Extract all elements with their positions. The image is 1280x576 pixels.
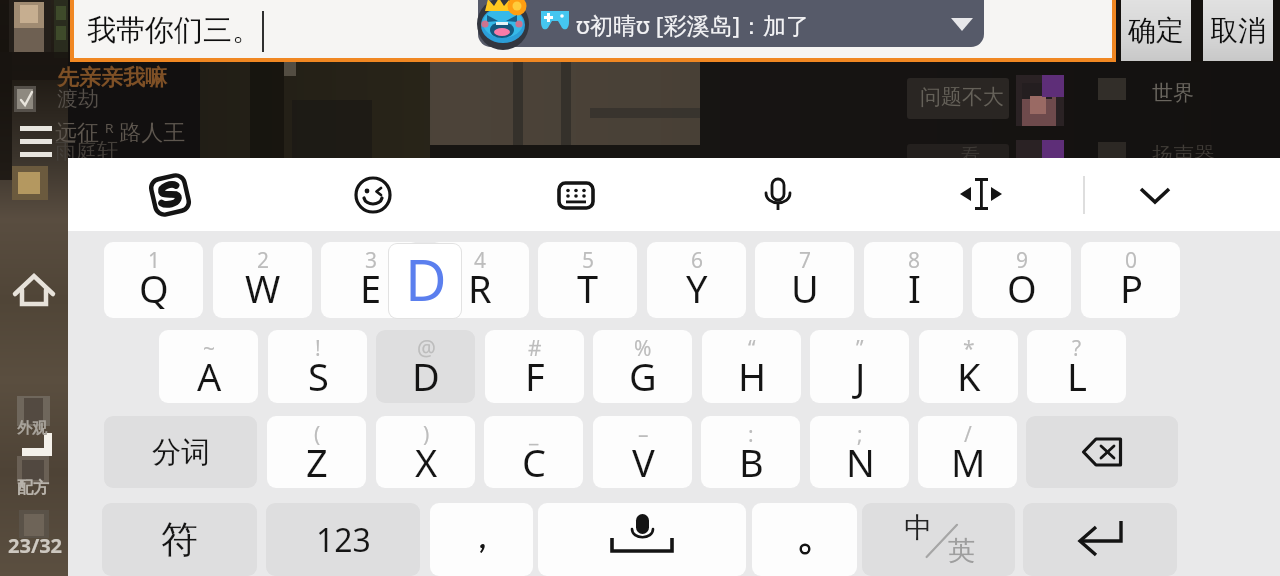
button[interactable]: ): [376, 416, 475, 488]
button[interactable]: 3: [321, 242, 420, 318]
staticText: F: [525, 350, 545, 402]
button[interactable]: %: [593, 330, 692, 403]
staticText: 取消: [1210, 13, 1266, 48]
staticText: O: [1007, 262, 1037, 314]
staticText: 23/32: [8, 532, 63, 559]
staticText: H: [738, 350, 767, 402]
staticText: A: [197, 350, 222, 402]
staticText: V: [632, 436, 655, 488]
button[interactable]: *: [919, 330, 1018, 403]
button[interactable]: 7: [755, 242, 854, 318]
staticText: “: [748, 334, 756, 363]
button[interactable]: Backspace: [1026, 416, 1178, 488]
staticText: W: [245, 262, 281, 314]
button[interactable]: Period: [752, 503, 857, 576]
staticText: 7: [799, 246, 812, 275]
button[interactable]: 8: [864, 242, 963, 318]
button[interactable]: #: [485, 330, 584, 403]
button[interactable]: D key preview: [389, 244, 461, 318]
button[interactable]: _: [484, 416, 583, 488]
staticText: 先亲亲我嘛: [57, 64, 167, 92]
button[interactable]: –: [593, 416, 692, 488]
staticText: Y: [686, 262, 708, 314]
button[interactable]: Space: [538, 503, 746, 576]
button[interactable]: 9: [972, 242, 1071, 318]
button[interactable]: :: [701, 416, 800, 488]
staticText: D: [405, 244, 447, 314]
button[interactable]: 123: [266, 503, 420, 576]
staticText: 2: [257, 246, 270, 275]
staticText: (: [314, 420, 321, 449]
staticText: 3: [365, 246, 378, 275]
button[interactable]: Sogou input method: [140, 165, 200, 225]
button[interactable]: Chinese English toggle: [862, 503, 1015, 576]
button[interactable]: Enter: [1023, 503, 1177, 576]
staticText: T: [577, 262, 599, 314]
staticText: /: [964, 420, 972, 449]
staticText: :: [748, 420, 754, 449]
staticText: Z: [306, 436, 328, 488]
button[interactable]: “: [702, 330, 801, 403]
staticText: 扬声器: [1152, 142, 1215, 168]
staticText: Q: [139, 262, 169, 314]
button[interactable]: Hide keyboard: [1125, 165, 1185, 225]
button[interactable]: @: [376, 330, 475, 403]
staticText: 问题不大: [920, 84, 1004, 110]
staticText: 世界: [1152, 80, 1194, 106]
button[interactable]: ;: [810, 416, 909, 488]
button[interactable]: ?: [1027, 330, 1126, 403]
button[interactable]: /: [918, 416, 1017, 488]
button[interactable]: Comma: [430, 503, 533, 576]
staticText: E: [360, 262, 382, 314]
staticText: 看: [960, 144, 980, 169]
button[interactable]: Keyboard layout: [546, 165, 606, 225]
staticText: ~: [203, 334, 216, 363]
button[interactable]: !: [268, 330, 367, 403]
staticText: 中: [904, 510, 932, 545]
staticText: S: [308, 350, 329, 402]
staticText: 9: [1016, 246, 1029, 275]
button[interactable]: Move cursor: [951, 165, 1011, 225]
staticText: C: [522, 436, 547, 488]
button[interactable]: 2: [213, 242, 312, 318]
staticText: %: [634, 334, 652, 363]
button[interactable]: ~: [159, 330, 258, 403]
button[interactable]: [478, 0, 984, 47]
staticText: !: [315, 334, 321, 363]
staticText: @: [417, 334, 436, 363]
staticText: ): [423, 420, 430, 449]
staticText: ”: [856, 334, 864, 363]
staticText: 8: [908, 246, 921, 275]
staticText: 渡劫: [57, 86, 99, 112]
staticText: P: [1120, 262, 1143, 314]
staticText: 6: [691, 246, 704, 275]
staticText: B: [739, 436, 764, 488]
button[interactable]: Voice input: [748, 165, 808, 225]
staticText: 雨庭轩: [55, 138, 118, 164]
button[interactable]: 4: [430, 242, 529, 318]
staticText: ʊ初晴ʊ [彩溪岛]：加了: [576, 9, 809, 40]
button[interactable]: 6: [647, 242, 746, 318]
staticText: 0: [1125, 246, 1138, 275]
button[interactable]: 0: [1081, 242, 1180, 318]
button[interactable]: 1: [104, 242, 203, 318]
staticText: _: [529, 420, 539, 449]
staticText: G: [629, 350, 657, 402]
staticText: 远征 ᴿ 路人王: [55, 116, 186, 146]
button[interactable]: 5: [538, 242, 637, 318]
staticText: L: [1067, 350, 1087, 402]
staticText: J: [855, 350, 866, 402]
button[interactable]: 分词: [104, 416, 257, 488]
button[interactable]: 符: [102, 503, 257, 576]
staticText: X: [415, 436, 438, 488]
button[interactable]: 确定: [1121, 0, 1191, 61]
staticText: –: [638, 420, 649, 449]
staticText: 配方: [17, 478, 49, 498]
button[interactable]: Emoji: [343, 165, 403, 225]
staticText: 123: [316, 518, 371, 562]
button[interactable]: 取消: [1203, 0, 1273, 61]
staticText: ?: [1072, 334, 1082, 363]
staticText: N: [846, 436, 875, 488]
button[interactable]: (: [267, 416, 366, 488]
button[interactable]: ”: [810, 330, 909, 403]
